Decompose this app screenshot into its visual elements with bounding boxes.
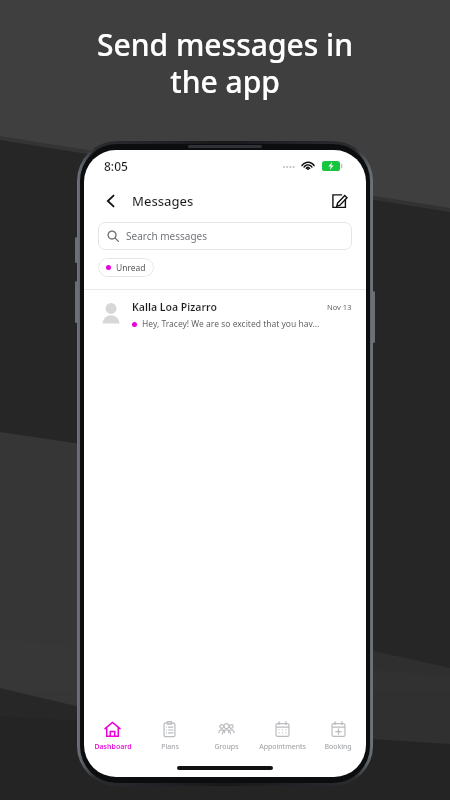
staticText: 8:05 <box>104 158 128 174</box>
staticText: Booking <box>324 742 352 752</box>
button[interactable]: Search messages <box>98 222 352 250</box>
staticText: Appointments <box>259 742 306 752</box>
button[interactable]: Back <box>98 188 124 214</box>
staticText: Nov 13 <box>327 302 352 312</box>
button[interactable]: Booking <box>310 713 366 759</box>
staticText: Search messages <box>126 229 208 243</box>
button[interactable]: Plans <box>141 713 198 759</box>
button[interactable]: Appointments <box>254 713 310 759</box>
staticText: Dashboard <box>94 742 132 752</box>
staticText: Plans <box>161 742 179 752</box>
button[interactable]: Compose message <box>326 188 352 214</box>
staticText: Kalla Loa Pizarro <box>132 300 217 314</box>
button[interactable]: Dashboard <box>84 713 141 759</box>
staticText: Hey, Tracey! We are so excited that you … <box>142 318 320 330</box>
staticText: Messages <box>132 192 194 210</box>
button[interactable]: Groups <box>198 713 254 759</box>
staticText: Send messages in the app <box>97 24 353 102</box>
staticText: Groups <box>214 742 239 752</box>
button[interactable]: Kalla Loa Pizarro <box>84 290 366 340</box>
button[interactable]: Unread <box>98 258 154 277</box>
staticText: Unread <box>116 262 146 274</box>
